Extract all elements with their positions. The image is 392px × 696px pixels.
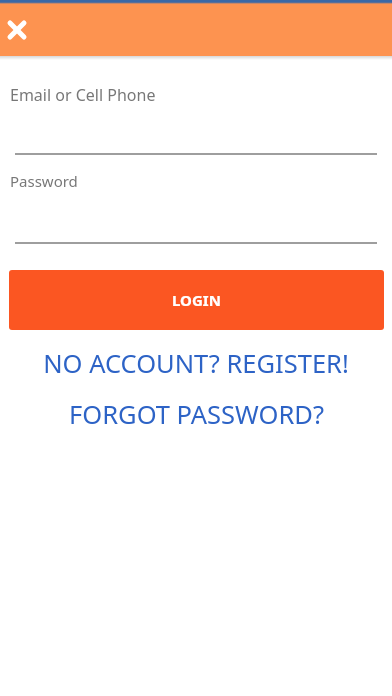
button[interactable]: FORGOT PASSWORD? bbox=[0, 397, 392, 432]
staticText: NO ACCOUNT? REGISTER! bbox=[43, 346, 349, 381]
staticText: FORGOT PASSWORD? bbox=[69, 397, 324, 432]
staticText: Password bbox=[10, 171, 78, 191]
button[interactable] bbox=[1, 14, 33, 46]
staticText: LOGIN bbox=[172, 290, 221, 310]
staticText: Email or Cell Phone bbox=[10, 84, 156, 106]
button[interactable]: LOGIN bbox=[9, 270, 384, 330]
button[interactable]: NO ACCOUNT? REGISTER! bbox=[0, 346, 392, 381]
